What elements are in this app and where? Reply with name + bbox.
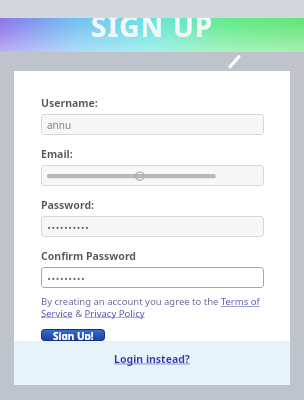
staticText: Login instead? xyxy=(114,352,190,366)
staticText: Email: xyxy=(41,147,73,161)
button[interactable]: Sign Up! xyxy=(41,329,105,341)
staticText: SIGN UP xyxy=(91,7,214,45)
staticText: Confirm Password xyxy=(41,249,137,263)
button[interactable] xyxy=(41,267,264,288)
staticText: annu xyxy=(47,118,72,132)
button[interactable] xyxy=(41,216,264,237)
button[interactable]: Login instead? xyxy=(114,352,190,366)
staticText: Username: xyxy=(41,96,98,110)
staticText: Sign Up! xyxy=(53,329,94,341)
button[interactable]: By creating an account you agree to the … xyxy=(41,295,264,319)
button[interactable]: Edit xyxy=(227,55,241,69)
staticText: Password: xyxy=(41,198,94,212)
button[interactable] xyxy=(41,165,264,186)
button[interactable]: annu xyxy=(41,114,264,135)
